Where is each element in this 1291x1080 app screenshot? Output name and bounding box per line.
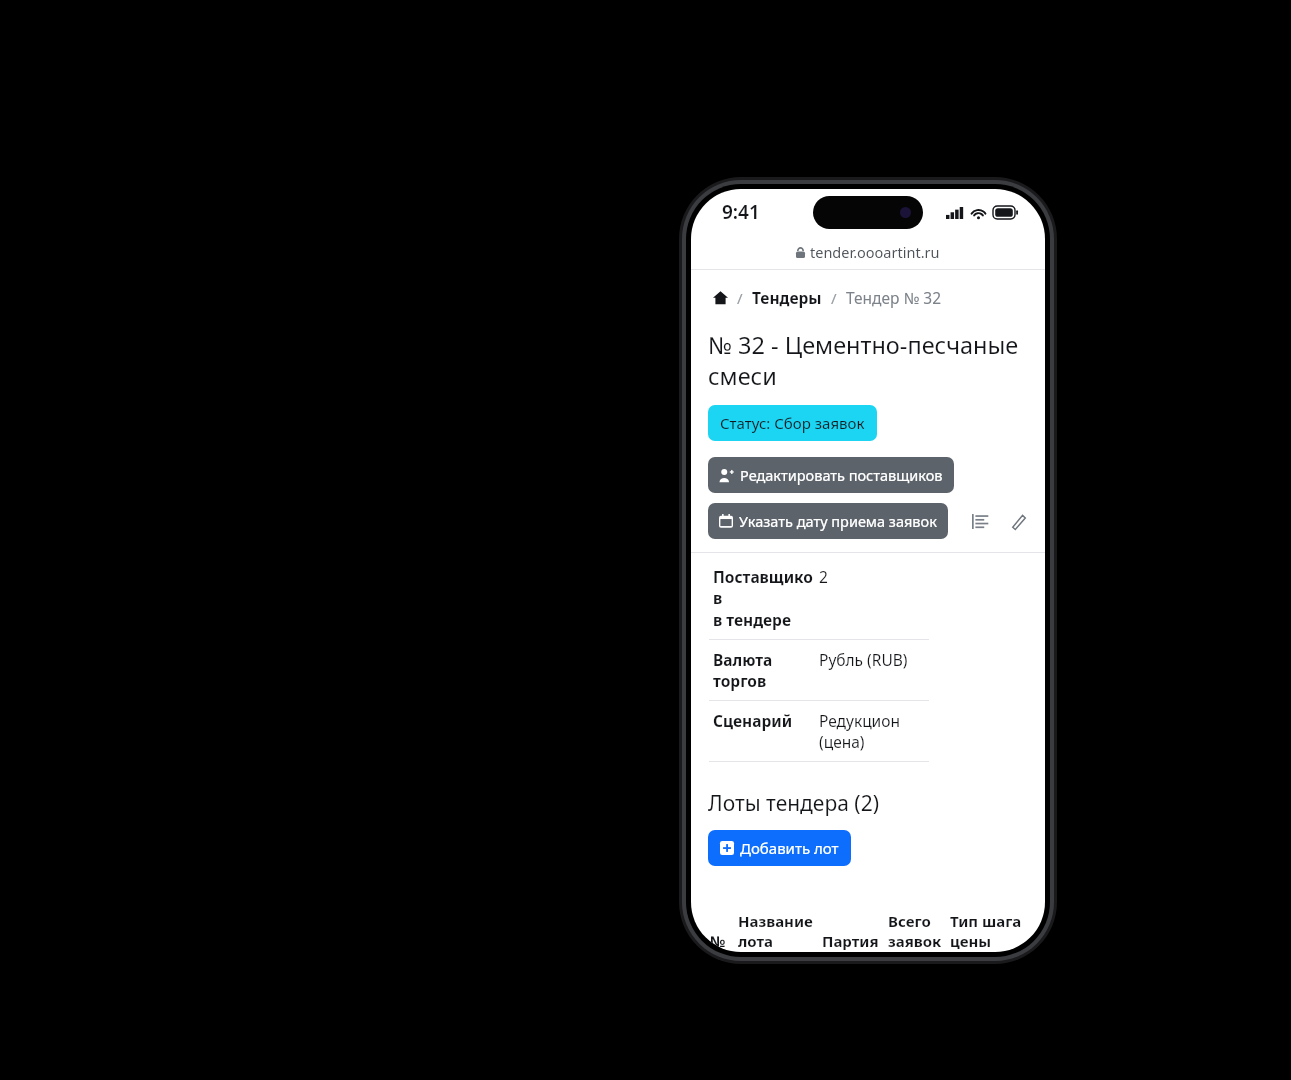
staticText: торгов xyxy=(713,670,767,691)
staticText: № 32 - Цементно-песчаные смеси xyxy=(708,329,1028,392)
staticText: / xyxy=(831,288,837,308)
button[interactable]: Edit xyxy=(1006,509,1031,534)
button[interactable]: Home xyxy=(713,290,728,305)
button[interactable]: Статус: Сбор заявок xyxy=(708,405,877,441)
button[interactable]: Тендеры xyxy=(752,287,822,308)
staticText: Редактировать поставщиков xyxy=(740,465,943,485)
staticText: Лоты тендера (2) xyxy=(708,789,879,818)
staticText: Тендеры xyxy=(752,287,822,308)
staticText: / xyxy=(737,288,743,308)
staticText: Название xyxy=(738,911,813,931)
staticText: Редукцион xyxy=(819,710,900,731)
staticText: № xyxy=(710,931,726,951)
staticText: 2 xyxy=(819,566,828,587)
staticText: Тип шага цены xyxy=(950,911,1045,951)
staticText: Статус: Сбор заявок xyxy=(720,413,865,433)
staticText: заявок xyxy=(888,931,942,951)
staticText: Сценарий xyxy=(713,710,793,731)
staticText: Рубль (RUB) xyxy=(819,649,908,670)
staticText: Валюта xyxy=(713,649,773,670)
staticText: 9:41 xyxy=(722,199,760,225)
button[interactable]: Указать дату приема заявок xyxy=(708,503,948,539)
staticText: Партия xyxy=(822,931,879,951)
staticText: tender.oooartint.ru xyxy=(810,242,940,262)
button[interactable]: Редактировать поставщиков xyxy=(708,457,954,493)
staticText: в тендере xyxy=(713,609,791,630)
staticText: Всего xyxy=(888,911,931,931)
staticText: Указать дату приема заявок xyxy=(739,511,937,531)
button[interactable]: Добавить лот xyxy=(708,830,851,866)
staticText: (цена) xyxy=(819,731,865,752)
staticText: Тендер № 32 xyxy=(846,287,942,308)
staticText: Поставщиков xyxy=(713,566,819,609)
staticText: лота xyxy=(738,931,774,951)
staticText: Добавить лот xyxy=(740,838,839,858)
button[interactable]: List view xyxy=(968,509,993,534)
